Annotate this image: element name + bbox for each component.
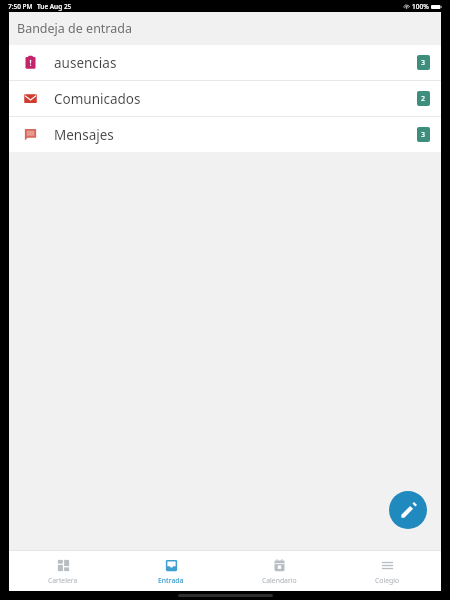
staticText: 3 [421,58,426,68]
button[interactable]: Calendario [225,551,333,591]
staticText: Entrada [158,576,184,585]
button[interactable]: Entrada [117,551,225,591]
staticText: Colegio [375,576,400,585]
staticText: 100% [412,2,429,11]
staticText: Mensajes [54,126,114,144]
staticText: 7:50 PM [8,2,33,11]
button[interactable]: Mensajes [9,117,441,152]
button[interactable]: Cartelera [9,551,117,591]
staticText: Bandeja de entrada [17,20,132,37]
staticText: 2 [421,94,426,104]
button[interactable]: Compose message [389,491,427,529]
staticText: Tue Aug 25 [37,2,72,11]
button[interactable]: Comunicados [9,81,441,116]
button[interactable]: ausencias [9,45,441,80]
staticText: 3 [421,130,426,140]
staticText: Comunicados [54,90,141,108]
button[interactable]: Colegio [333,551,441,591]
staticText: Calendario [262,576,297,585]
staticText: ausencias [54,54,117,72]
staticText: Cartelera [48,576,78,585]
